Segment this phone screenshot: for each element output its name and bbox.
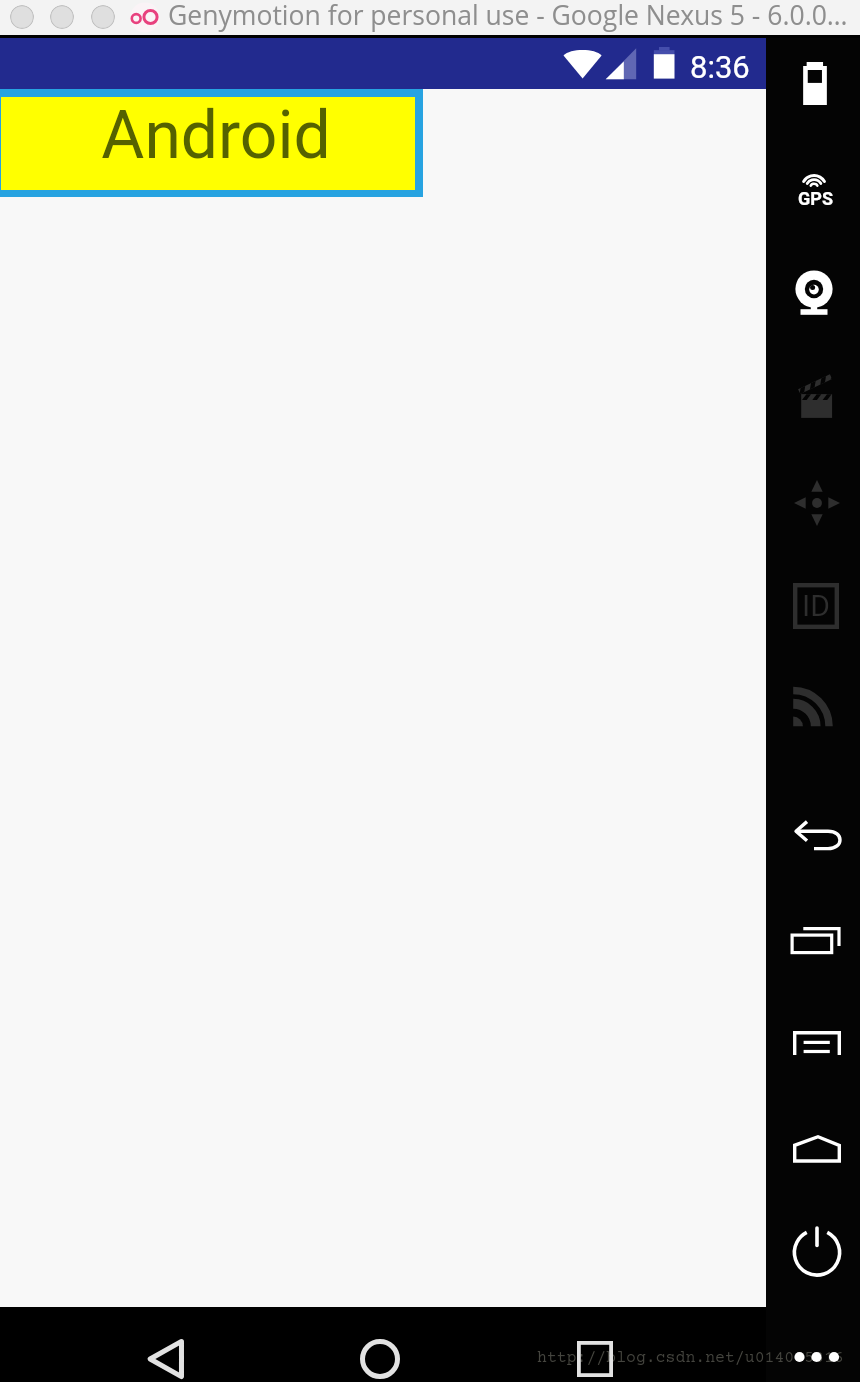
- button[interactable]: Camera: [767, 260, 860, 328]
- button[interactable]: Genymotion: [126, 0, 164, 35]
- button[interactable]: More options: [790, 1347, 844, 1369]
- staticText: Genymotion for personal use - Google Nex…: [168, 0, 848, 32]
- button[interactable]: Recent apps: [770, 907, 860, 975]
- button[interactable]: Minimise window: [50, 5, 74, 29]
- button[interactable]: Network: [766, 672, 860, 740]
- button[interactable]: Zoom window: [91, 5, 115, 29]
- button[interactable]: Record screen: [768, 362, 860, 430]
- button[interactable]: Home: [340, 1321, 420, 1382]
- button[interactable]: Android: [0, 89, 423, 197]
- staticText: Android: [101, 97, 331, 174]
- button[interactable]: Battery: [768, 51, 860, 119]
- button[interactable]: Power: [770, 1219, 860, 1287]
- button[interactable]: Identifiers: [769, 572, 860, 640]
- staticText: GPS: [798, 188, 833, 209]
- button[interactable]: Recent apps: [555, 1321, 635, 1382]
- button[interactable]: GPS: [768, 154, 860, 222]
- button[interactable]: Back: [126, 1321, 206, 1382]
- staticText: http://blog.csdn.net/u014005316: [537, 1349, 844, 1368]
- button[interactable]: Home: [771, 1115, 860, 1183]
- button[interactable]: Back: [771, 802, 860, 870]
- staticText: 8:36: [690, 49, 750, 85]
- button[interactable]: Menu: [771, 1010, 860, 1078]
- staticText: ID: [802, 588, 830, 623]
- button[interactable]: Rotate: [770, 469, 860, 537]
- button[interactable]: Close window: [10, 5, 34, 29]
